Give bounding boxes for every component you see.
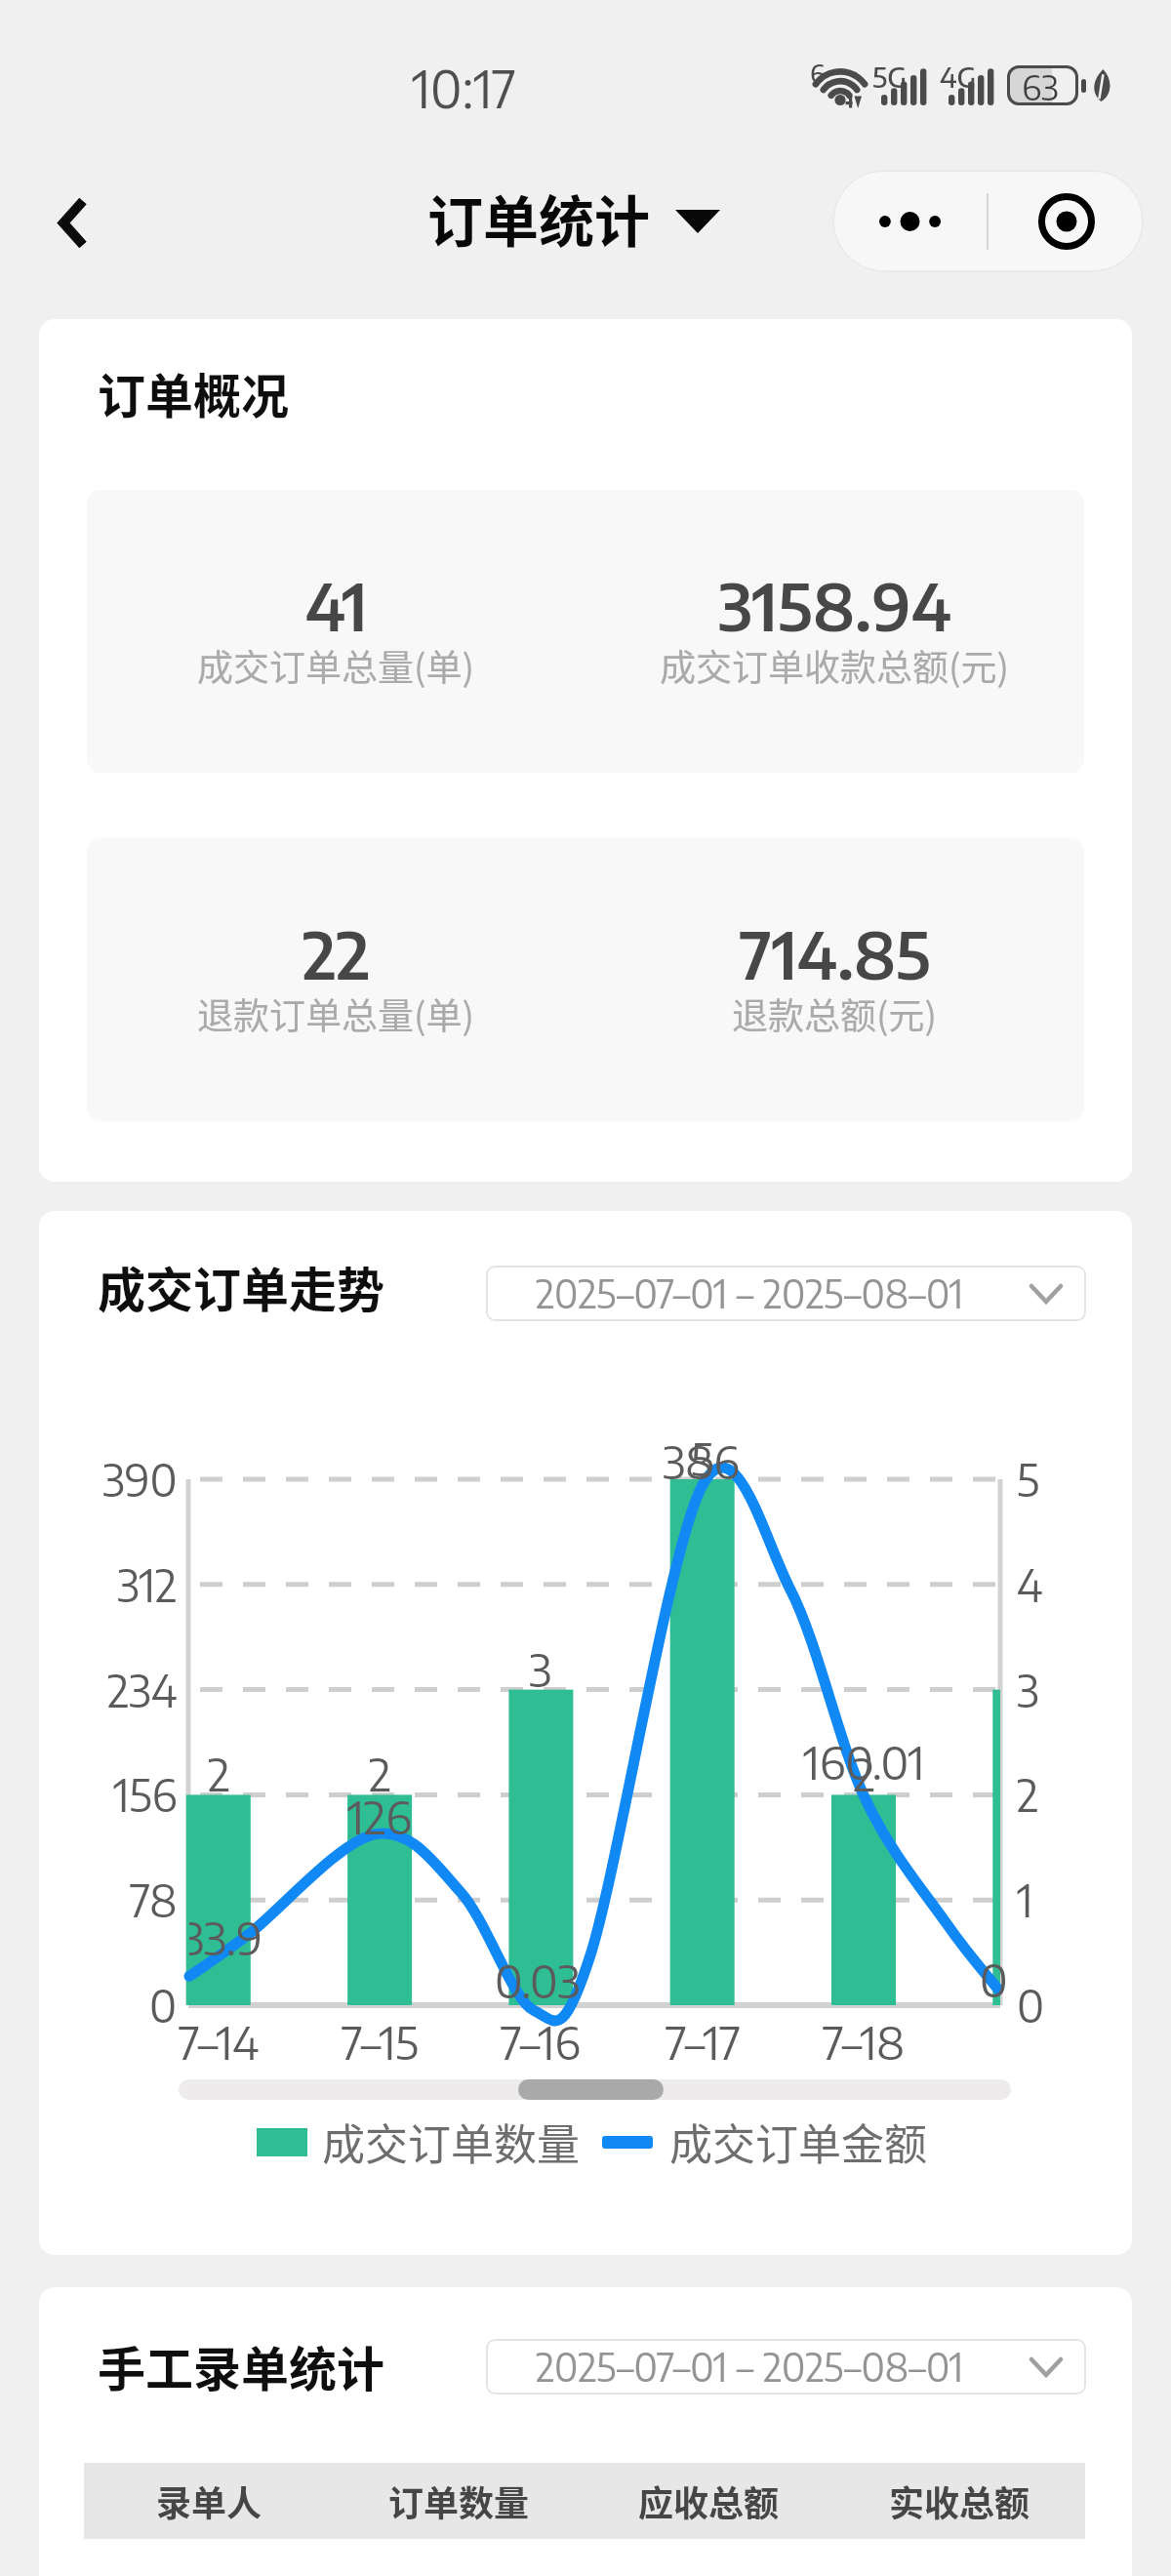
staticText: 22 (303, 913, 370, 982)
staticText: 成交订单走势 (98, 1252, 385, 1321)
button[interactable]: 2025–07–01 – 2025–08–01 (486, 2339, 1086, 2395)
staticText: 2 (208, 1746, 230, 1792)
staticText: 3 (1017, 1663, 1039, 1710)
staticText: 成交订单收款总额(元) (660, 639, 1010, 690)
staticText: 应收总额 (638, 2475, 780, 2526)
staticText: 10:17 (412, 56, 516, 119)
staticText: 156 (113, 1767, 178, 1814)
staticText: 退款总额(元) (732, 987, 938, 1038)
staticText: 3158.94 (718, 565, 951, 633)
button[interactable]: More options (832, 170, 987, 272)
staticText: 2025–07–01 – 2025–08–01 (536, 2343, 963, 2391)
staticText: 0 (980, 1952, 1008, 1998)
staticText: 实收总额 (889, 2475, 1030, 2526)
staticText: 7–16 (501, 2014, 581, 2061)
staticText: 退款订单总量(单) (197, 987, 475, 1038)
staticText: 订单概况 (98, 358, 290, 427)
staticText: 2 (1017, 1767, 1039, 1814)
button[interactable]: 22 (87, 838, 1084, 1121)
staticText: 4 (1017, 1557, 1043, 1604)
staticText: 0 (149, 1978, 178, 2025)
staticText: 33.9 (189, 1910, 263, 1956)
staticText: 5G (872, 59, 908, 94)
button[interactable]: 2025–07–01 – 2025–08–01 (486, 1266, 1086, 1321)
staticText: 0.03 (495, 1952, 581, 1999)
staticText: 订单统计 (427, 178, 650, 252)
staticText: 1 (1017, 1872, 1033, 1919)
staticText: 386 (663, 1433, 740, 1480)
button[interactable]: 订单统计 (427, 178, 720, 252)
staticText: 41 (305, 565, 368, 633)
staticText: 手工录单统计 (98, 2331, 385, 2400)
staticText: 7–18 (823, 2014, 905, 2061)
staticText: 5 (1017, 1452, 1040, 1499)
staticText: 成交订单数量 (322, 2111, 580, 2173)
staticText: 2 (853, 1746, 875, 1792)
button[interactable]: 41 (87, 490, 1084, 773)
staticText: 714.85 (740, 913, 931, 982)
button[interactable]: Back (22, 174, 120, 271)
staticText: 390 (102, 1452, 178, 1499)
staticText: 312 (117, 1557, 178, 1604)
staticText: 2 (369, 1746, 391, 1792)
staticText: 126 (347, 1789, 412, 1835)
button[interactable]: Close (989, 170, 1144, 272)
staticText: 3 (529, 1641, 552, 1688)
staticText: 4G (940, 59, 977, 94)
staticText: 录单人 (156, 2475, 262, 2526)
staticText: 6 (810, 57, 826, 88)
staticText: 160.01 (803, 1734, 925, 1781)
staticText: 成交订单总量(单) (197, 639, 475, 690)
staticText: 78 (130, 1872, 178, 1919)
staticText: 2025–07–01 – 2025–08–01 (536, 1269, 963, 1317)
staticText: 成交订单金额 (669, 2111, 927, 2173)
staticText: 63 (1022, 65, 1059, 105)
staticText: 0 (1017, 1978, 1045, 2025)
staticText: 5 (691, 1430, 714, 1477)
staticText: 7–17 (666, 2014, 741, 2061)
staticText: 7–14 (179, 2014, 260, 2061)
staticText: 7–15 (342, 2014, 419, 2061)
staticText: 234 (107, 1663, 178, 1710)
staticText: 订单数量 (388, 2475, 530, 2526)
